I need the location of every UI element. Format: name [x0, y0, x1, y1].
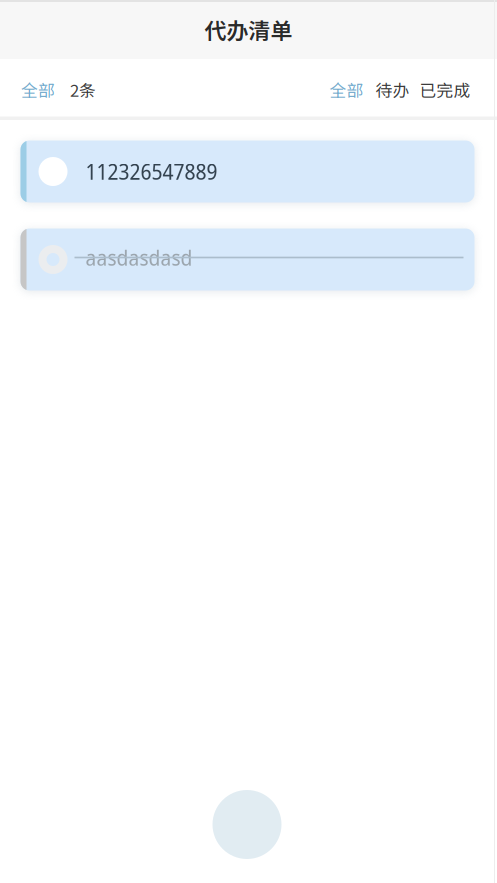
button[interactable]: 112326547889 [0, 140, 497, 202]
staticText: 全部 [329, 77, 363, 101]
staticText: 待办 [375, 77, 409, 101]
staticText: 已完成 [419, 77, 470, 101]
button[interactable]: 全部 [329, 77, 363, 101]
button[interactable]: Add task [214, 790, 283, 859]
staticText: 112326547889 [85, 157, 217, 186]
button[interactable]: aasdasdasd [0, 228, 497, 290]
button[interactable]: 全部 [21, 77, 55, 101]
button[interactable]: 待办 [363, 77, 409, 101]
button[interactable]: 已完成 [409, 77, 470, 101]
button[interactable]: 2条 [55, 77, 96, 101]
staticText: aasdasdasd [85, 243, 192, 272]
staticText: 代办清单 [204, 14, 292, 45]
staticText: 2条 [70, 77, 96, 101]
staticText: 全部 [21, 77, 55, 101]
